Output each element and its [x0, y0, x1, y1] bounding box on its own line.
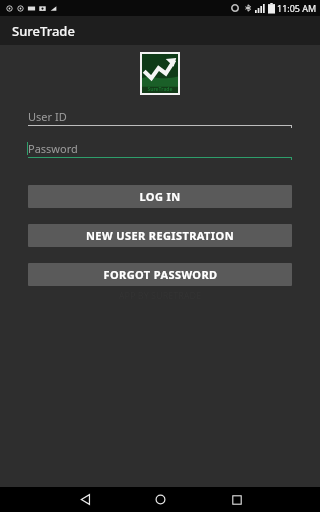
staticText: Password [28, 141, 78, 156]
button[interactable]: Back [70, 487, 100, 512]
staticText: SureTrade [142, 86, 178, 93]
staticText: 11:05 AM [277, 2, 317, 14]
staticText: NEW USER REGISTRATION [86, 228, 234, 243]
staticText: SureTrade [12, 22, 75, 40]
button[interactable]: Home [145, 487, 175, 512]
button[interactable]: NEW USER REGISTRATION [28, 224, 292, 247]
staticText: User ID [28, 109, 67, 124]
staticText: FORGOT PASSWORD [103, 267, 218, 282]
button[interactable]: LOG IN [28, 185, 292, 208]
button[interactable]: Password [28, 140, 292, 160]
button[interactable]: User ID [28, 108, 292, 128]
button[interactable]: Recent apps [222, 487, 252, 512]
staticText: LOG IN [139, 189, 181, 204]
button[interactable]: FORGOT PASSWORD [28, 263, 292, 286]
